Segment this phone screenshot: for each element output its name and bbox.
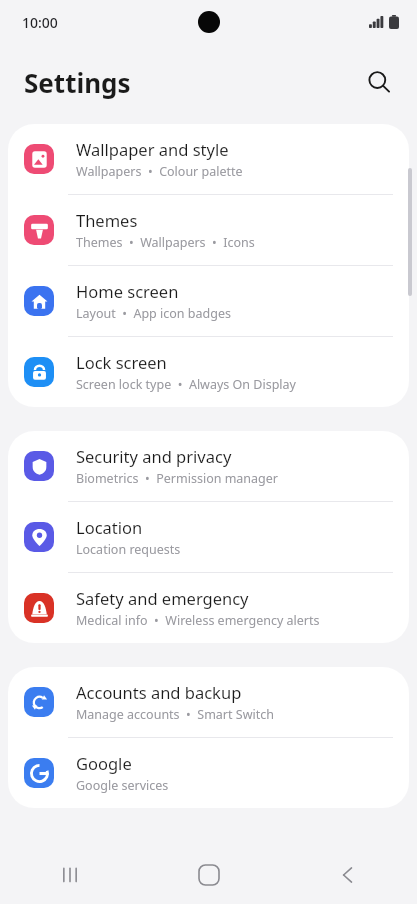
button[interactable]: Accounts and backup [8,667,409,737]
staticText: Settings [24,65,131,100]
staticText: 10:00 [22,13,58,32]
staticText: Accounts and backup [76,681,242,703]
staticText: Location requests [76,541,181,558]
button[interactable]: Security and privacy [8,431,409,501]
button[interactable]: Google [8,738,409,808]
staticText: Manage accounts • Smart Switch [76,706,274,723]
button[interactable]: Back [278,846,417,904]
button[interactable]: Home [139,846,278,904]
staticText: Themes [76,209,138,231]
staticText: Layout • App icon badges [76,305,231,322]
staticText: Lock screen [76,351,167,373]
staticText: Google services [76,777,169,794]
staticText: Safety and emergency [76,587,249,609]
staticText: Home screen [76,280,179,302]
button[interactable]: Themes [8,195,409,265]
button[interactable]: Safety and emergency [8,573,409,643]
staticText: Themes • Wallpapers • Icons [76,234,255,251]
staticText: Medical info • Wireless emergency alerts [76,612,320,629]
staticText: Google [76,752,132,774]
staticText: Wallpapers • Colour palette [76,163,243,180]
staticText: Biometrics • Permission manager [76,470,279,487]
staticText: Screen lock type • Always On Display [76,376,296,393]
staticText: Security and privacy [76,445,232,467]
button[interactable]: Home screen [8,266,409,336]
staticText: Wallpaper and style [76,138,229,160]
staticText: Location [76,516,143,538]
button[interactable]: Wallpaper and style [8,124,409,194]
button[interactable]: Lock screen [8,337,409,407]
button[interactable]: Search [355,58,403,106]
button[interactable]: Location [8,502,409,572]
button[interactable]: Recents [0,846,139,904]
